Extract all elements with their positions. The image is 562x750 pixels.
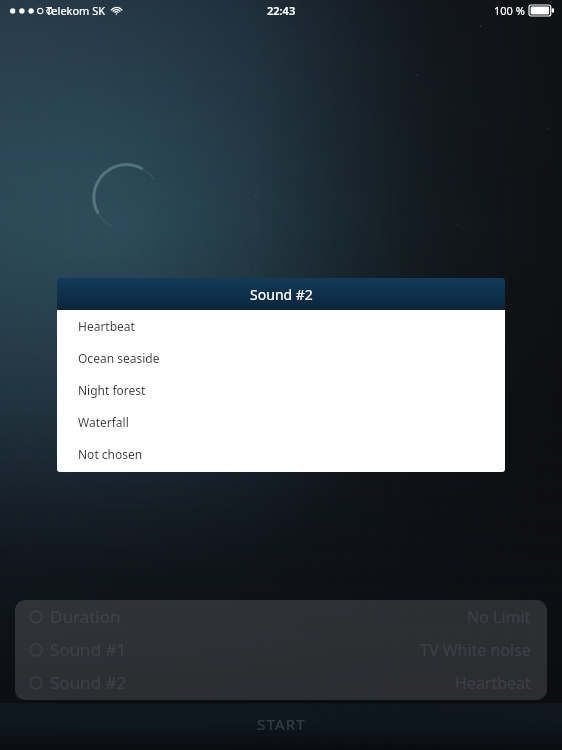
staticText: TV White noise (420, 639, 531, 661)
button[interactable]: Night forest (57, 374, 505, 406)
button[interactable]: Duration (15, 600, 547, 633)
button[interactable]: Not chosen (57, 438, 505, 470)
staticText: No Limit (467, 606, 531, 628)
staticText: Sound #2 (250, 285, 313, 304)
staticText: Sound #2 (50, 671, 127, 694)
button[interactable]: Waterfall (57, 406, 505, 438)
staticText: Ocean seaside (78, 350, 160, 366)
staticText: 22:43 (267, 3, 296, 18)
staticText: START (257, 714, 306, 734)
staticText: Telekom SK (46, 3, 106, 18)
staticText: Waterfall (78, 414, 129, 430)
staticText: Duration (50, 605, 121, 628)
staticText: 100 % (494, 3, 525, 18)
staticText: Heartbeat (78, 318, 135, 334)
staticText: Night forest (78, 382, 146, 398)
staticText: Sound #1 (50, 638, 127, 661)
button[interactable]: Heartbeat (57, 310, 505, 342)
other: Wi-Fi (111, 5, 122, 16)
button[interactable]: START (0, 703, 562, 745)
button[interactable]: Sound #2 (15, 666, 547, 699)
other: Battery full (529, 5, 554, 16)
button[interactable]: Sound #1 (15, 633, 547, 666)
button[interactable]: Ocean seaside (57, 342, 505, 374)
staticText: Not chosen (78, 446, 143, 462)
staticText: Heartbeat (455, 672, 531, 694)
